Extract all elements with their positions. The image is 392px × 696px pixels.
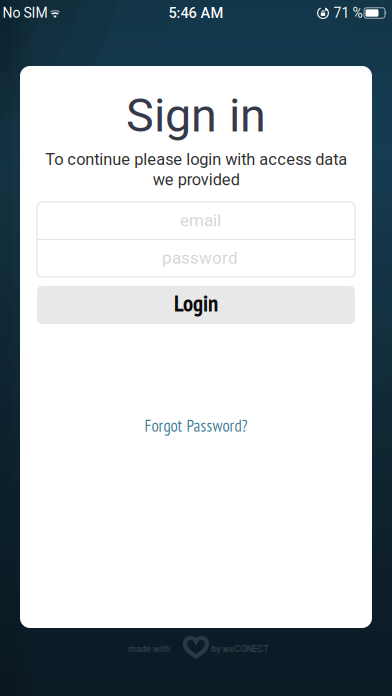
- staticText: by weCONECT: [211, 644, 268, 654]
- staticText: by weCONECT: [212, 644, 269, 654]
- staticText: email: [180, 210, 221, 230]
- staticText: made with: [127, 644, 169, 654]
- staticText: by weCONECT: [211, 644, 268, 654]
- staticText: 71 %: [333, 5, 362, 21]
- staticText: To continue please login with access dat…: [45, 150, 347, 189]
- staticText: No SIM: [2, 5, 47, 21]
- staticText: 5:46 AM: [168, 4, 223, 22]
- staticText: made with: [128, 644, 170, 654]
- staticText: Sign in: [126, 88, 266, 143]
- staticText: Login: [174, 288, 218, 318]
- staticText: made with: [129, 644, 171, 654]
- staticText: Forgot Password?: [144, 415, 247, 436]
- staticText: password: [162, 248, 238, 268]
